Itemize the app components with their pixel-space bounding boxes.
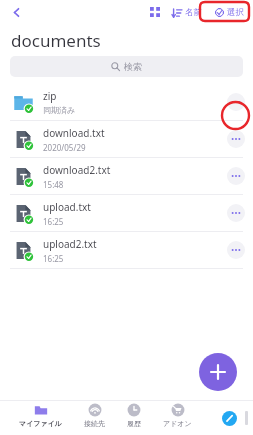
button[interactable]: More options [227,167,245,185]
staticText: 16:25 [43,216,64,227]
button[interactable]: More options [227,93,245,111]
button[interactable]: download2.txt [0,158,253,195]
staticText: download2.txt [43,163,111,177]
staticText: 接続先 [84,419,105,428]
button[interactable]: アドオン [160,401,195,430]
staticText: 16:25 [43,253,64,264]
button[interactable]: 名前 [170,5,204,20]
staticText: upload2.txt [43,237,97,251]
button[interactable]: More options [227,130,245,148]
staticText: 2020/05/29 [43,142,86,153]
staticText: 検索 [124,61,142,72]
button[interactable]: zip [0,84,253,121]
button[interactable]: upload.txt [0,195,253,232]
staticText: download.txt [43,126,105,140]
staticText: 同期済み [43,105,76,115]
staticText: zip [43,89,57,103]
staticText: upload.txt [43,200,91,214]
button[interactable]: 接続先 [81,401,108,430]
staticText: 履歴 [127,419,141,428]
button[interactable]: 検索 [10,56,243,77]
button[interactable]: マイファイル [16,401,65,430]
staticText: 名前 [185,7,202,18]
button[interactable]: Add [199,353,237,391]
button[interactable]: download.txt [0,121,253,158]
button[interactable]: upload2.txt [0,232,253,269]
button[interactable]: More options [227,241,245,259]
button[interactable]: More options [227,204,245,222]
staticText: 15:48 [43,179,64,190]
button[interactable]: 履歴 [124,401,144,430]
button[interactable]: Edit [219,407,253,429]
button[interactable]: Grid view [145,2,165,22]
staticText: マイファイル [19,419,62,428]
button[interactable]: Back [5,1,27,23]
button[interactable]: 選択 [212,4,247,21]
staticText: アドオン [163,419,192,428]
staticText: documents [11,29,101,52]
staticText: 選択 [227,7,244,18]
